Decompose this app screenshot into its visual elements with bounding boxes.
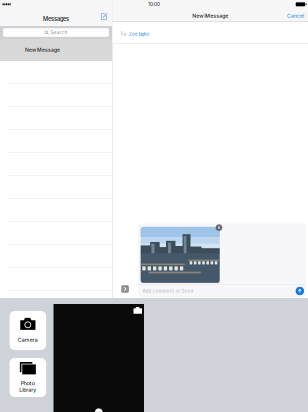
staticText: Cancel <box>287 13 304 19</box>
staticText: Messages <box>43 16 69 22</box>
staticText: 10:00 <box>148 1 160 7</box>
staticText: To: <box>120 31 127 37</box>
button[interactable]: Camera <box>10 311 46 350</box>
staticText: Search <box>50 29 67 35</box>
button[interactable]: Switch camera <box>131 305 144 316</box>
staticText: Library <box>19 386 36 393</box>
staticText: Photo <box>21 380 35 387</box>
button[interactable]: New Message <box>0 39 112 61</box>
button[interactable]: Cancel <box>283 10 308 21</box>
button[interactable]: More options <box>120 283 130 294</box>
button[interactable]: Remove attachment <box>216 224 222 231</box>
staticText: Add comment or Send <box>143 288 194 294</box>
staticText: Camera <box>18 337 38 343</box>
button[interactable]: Photo <box>10 358 46 397</box>
staticText: Zoe Taylor <box>129 32 150 37</box>
button[interactable]: Send <box>295 285 305 296</box>
button[interactable]: To: <box>113 22 308 43</box>
staticText: New Message <box>25 47 60 53</box>
button[interactable]: Take photo <box>93 406 105 412</box>
staticText: New iMessage <box>192 13 228 19</box>
button[interactable]: Compose <box>98 10 110 22</box>
